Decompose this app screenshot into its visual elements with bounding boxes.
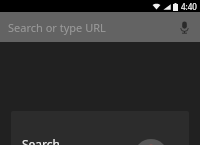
staticText: Search or type URL	[8, 20, 106, 35]
button[interactable]: Voice search	[175, 18, 193, 36]
button[interactable]: Record	[123, 139, 179, 145]
button[interactable]: Search	[11, 111, 189, 145]
button[interactable]: Search or type URL	[0, 12, 200, 42]
staticText: 4:40	[181, 1, 197, 12]
staticText: Search	[22, 136, 60, 145]
